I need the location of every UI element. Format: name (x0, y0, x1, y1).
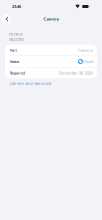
staticText: Learn more about camera repair (9, 82, 51, 85)
button[interactable]: Status (5, 56, 97, 67)
staticText: Status (9, 59, 19, 64)
staticText: 23:46 (12, 4, 21, 9)
staticText: Camera (43, 16, 58, 22)
staticText: Part (9, 47, 16, 53)
button[interactable]: Part (5, 45, 97, 56)
staticText: Repaired (9, 70, 24, 76)
staticText: REPAIR RECORD (9, 31, 24, 42)
button[interactable]: Repaired (5, 67, 97, 78)
staticText: Used (83, 59, 92, 64)
button[interactable]: Back (2, 14, 12, 24)
button[interactable]: Learn more about camera repair (9, 82, 51, 85)
staticText: December 30, 2020 (58, 70, 92, 76)
staticText: Camera (77, 47, 92, 53)
